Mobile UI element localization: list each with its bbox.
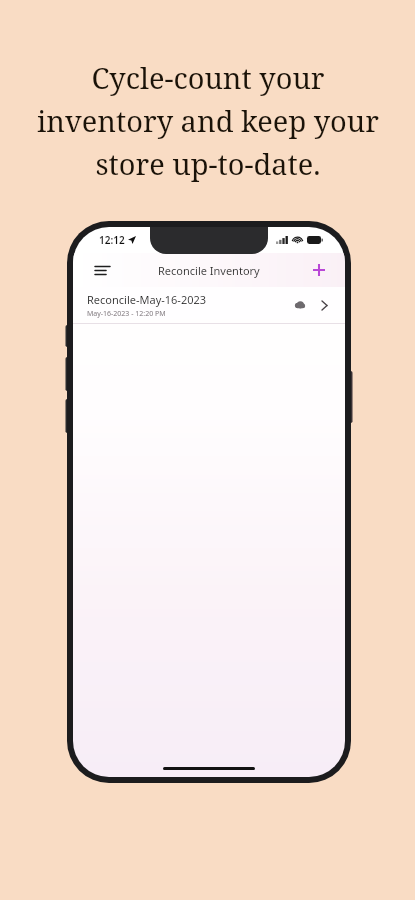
staticText: Reconcile-May-16-2023 <box>87 292 207 307</box>
button[interactable]: Add <box>305 256 333 284</box>
staticText: 12:12 <box>99 233 125 247</box>
staticText: Reconcile Inventory <box>158 263 260 278</box>
button[interactable]: Open <box>315 296 333 314</box>
staticText: Cycle-count your inventory and keep your… <box>37 58 379 183</box>
button[interactable]: Sync to cloud <box>289 295 309 315</box>
button[interactable]: Menu <box>87 255 117 285</box>
staticText: May-16-2023 - 12:20 PM <box>87 309 166 319</box>
button[interactable]: Reconcile-May-16-2023 <box>73 287 345 323</box>
